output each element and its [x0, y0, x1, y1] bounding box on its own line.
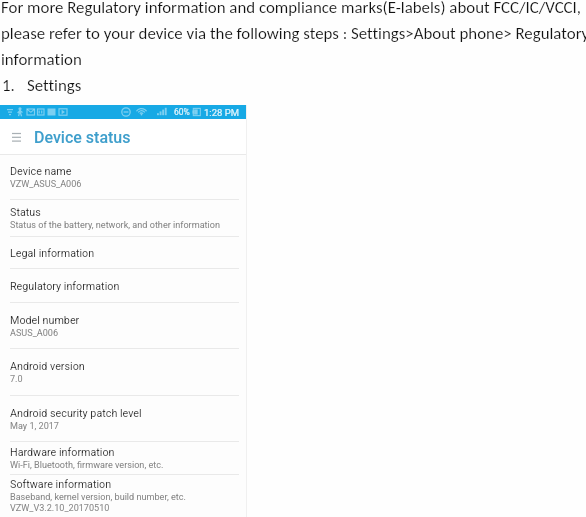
staticText: Legal information	[10, 247, 95, 260]
button[interactable]: Device name	[0, 155, 247, 200]
staticText: Device name	[10, 165, 72, 178]
staticText: Regulatory information	[10, 280, 120, 293]
staticText: ASUS_A006	[10, 328, 58, 339]
staticText: please refer to your device via the foll…	[1, 23, 586, 44]
staticText: Status	[10, 206, 41, 219]
staticText: Software information	[10, 478, 112, 491]
button[interactable]: Legal information	[0, 237, 247, 269]
button[interactable]: Android version	[0, 349, 247, 396]
staticText: Android version	[10, 360, 85, 373]
button[interactable]: Software information	[0, 475, 247, 517]
button[interactable]: Model number	[0, 303, 247, 349]
staticText: Device status	[34, 128, 131, 147]
button[interactable]: Open navigation menu	[7, 128, 25, 146]
staticText: 1:28 PM	[204, 107, 239, 118]
staticText: 60%	[174, 107, 190, 117]
button[interactable]: Android security patch level	[0, 396, 247, 442]
staticText: Status of the battery, network, and othe…	[10, 220, 221, 231]
button[interactable]: Status	[0, 200, 247, 237]
staticText: 7.0	[10, 374, 23, 385]
button[interactable]: Regulatory information	[0, 269, 247, 303]
staticText: Wi-Fi, Bluetooth, firmware version, etc.	[10, 460, 164, 471]
staticText: Hardware information	[10, 446, 115, 459]
staticText: Settings	[27, 75, 82, 96]
staticText: information	[1, 49, 82, 70]
staticText: VZW_V3.2.10_20170510	[10, 503, 110, 514]
staticText: 1.	[2, 75, 15, 96]
staticText: Model number	[10, 314, 80, 327]
staticText: Baseband, kernel version, build number, …	[10, 492, 186, 503]
staticText: For more Regulatory information and comp…	[1, 0, 582, 18]
staticText: VZW_ASUS_A006	[10, 179, 82, 190]
staticText: Android security patch level	[10, 407, 142, 420]
button[interactable]: Hardware information	[0, 442, 247, 475]
staticText: May 1, 2017	[10, 421, 59, 432]
